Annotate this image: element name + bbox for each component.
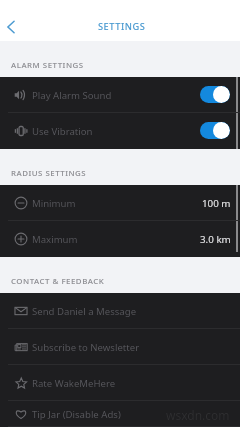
staticText: 3.0 km xyxy=(200,233,231,246)
staticText: Tip Jar (Disable Ads) xyxy=(32,408,121,421)
staticText: wsxdn.com xyxy=(166,407,230,423)
staticText: 100 m xyxy=(202,197,231,210)
button[interactable]: Play Alarm Sound xyxy=(0,77,240,113)
staticText: Subscribe to Newsletter xyxy=(32,341,140,354)
staticText: Use Vibration xyxy=(32,125,93,138)
staticText: ALARM SETTINGS xyxy=(11,60,84,71)
staticText: RADIUS SETTINGS xyxy=(11,168,87,179)
staticText: SETTINGS xyxy=(98,20,146,33)
button[interactable]: Subscribe to Newsletter xyxy=(0,329,240,365)
button[interactable]: Minimum xyxy=(0,185,240,221)
staticText: Maximum xyxy=(32,233,78,246)
staticText: Play Alarm Sound xyxy=(32,89,112,102)
button[interactable]: Send Daniel a Message xyxy=(0,293,240,329)
button[interactable]: Tip Jar (Disable Ads) xyxy=(0,401,240,427)
staticText: CONTACT & FEEDBACK xyxy=(11,276,105,287)
button[interactable]: Back xyxy=(0,13,22,41)
staticText: Rate WakeMeHere xyxy=(32,377,116,390)
button[interactable]: Use Vibration xyxy=(0,113,240,149)
button[interactable]: Rate WakeMeHere xyxy=(0,365,240,401)
staticText: Send Daniel a Message xyxy=(32,305,137,318)
staticText: Minimum xyxy=(32,197,76,210)
button[interactable]: Maximum xyxy=(0,221,240,257)
